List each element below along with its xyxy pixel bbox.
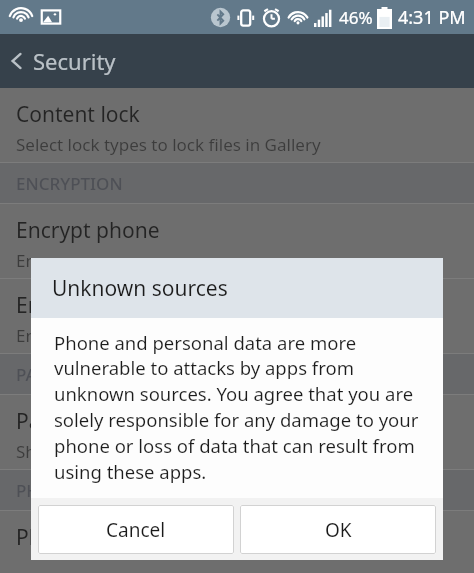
staticText: Cancel [106,517,166,543]
button[interactable]: Phone administrators [0,511,474,571]
staticText: Phone and personal data are more vulnera… [54,330,429,485]
staticText: Security [33,46,116,76]
staticText: Encrypt phone [16,216,160,245]
staticText: Phone administrators [16,523,230,552]
button[interactable]: OK [240,505,436,554]
button[interactable]: Pa [0,395,474,469]
staticText: Select lock types to lock files in Galle… [16,133,321,156]
staticText: En [16,324,36,347]
button[interactable]: Cancel [38,505,234,554]
staticText: En [16,249,36,272]
staticText: OK [325,517,352,543]
staticText: Content lock [16,100,140,129]
staticText: 4:31 PM [398,5,466,30]
staticText: Pa [16,407,41,436]
staticText: 46% [339,6,373,29]
button[interactable]: Encrypt phone [0,204,474,278]
staticText: En [16,291,41,320]
staticText: Unknown sources [52,274,228,303]
staticText: ENCRYPTION [16,172,123,195]
staticText: PH [16,479,40,502]
staticText: Sh [16,440,36,463]
staticText: typ [16,465,42,469]
button[interactable]: En [0,279,474,353]
button[interactable]: Back to Security [0,34,474,88]
button[interactable]: Content lock [0,88,474,162]
staticText: PA [16,363,37,386]
